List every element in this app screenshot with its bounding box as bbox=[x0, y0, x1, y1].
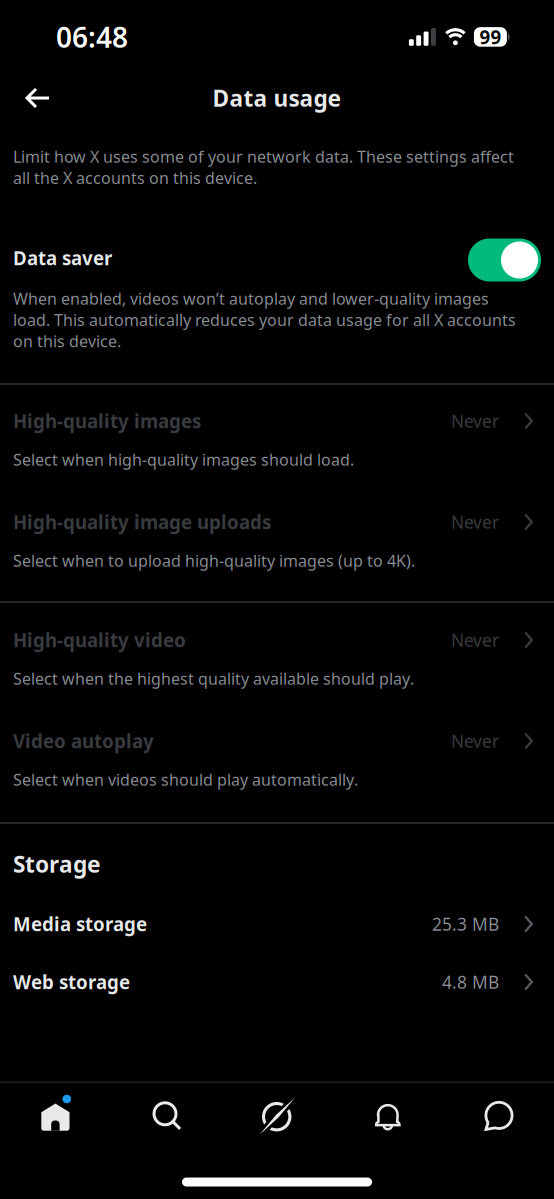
button[interactable]: Media storage bbox=[0, 902, 554, 946]
button[interactable]: Notifications bbox=[332, 1083, 443, 1151]
staticText: High-quality video bbox=[13, 628, 186, 652]
staticText: Never bbox=[451, 510, 499, 533]
button[interactable]: High-quality images bbox=[0, 399, 554, 443]
staticText: 99 bbox=[479, 24, 501, 49]
staticText: 25.3 MB bbox=[432, 912, 499, 935]
staticText: Media storage bbox=[13, 912, 147, 936]
staticText: Data usage bbox=[212, 83, 341, 113]
staticText: Never bbox=[451, 729, 499, 752]
button[interactable]: High-quality image uploads bbox=[0, 500, 554, 544]
staticText: 06:48 bbox=[56, 18, 128, 55]
staticText: Web storage bbox=[13, 970, 130, 994]
staticText: Video autoplay bbox=[13, 729, 154, 753]
button[interactable]: Messages bbox=[443, 1083, 554, 1151]
button[interactable]: Home bbox=[0, 1083, 111, 1151]
staticText: Never bbox=[451, 409, 499, 432]
button[interactable]: High-quality video bbox=[0, 618, 554, 662]
staticText: Select when videos should play automatic… bbox=[13, 769, 358, 790]
staticText: High-quality images bbox=[13, 409, 201, 433]
button[interactable]: Back bbox=[0, 76, 60, 120]
staticText: Select when high-quality images should l… bbox=[13, 449, 354, 470]
button[interactable]: Search bbox=[111, 1083, 222, 1151]
staticText: 4.8 MB bbox=[442, 970, 499, 993]
staticText: High-quality image uploads bbox=[13, 510, 271, 534]
staticText: Data saver bbox=[13, 246, 112, 270]
staticText: Never bbox=[451, 628, 499, 651]
button[interactable]: Grok bbox=[222, 1083, 332, 1151]
button[interactable]: Data saver bbox=[468, 236, 541, 279]
staticText: Limit how X uses some of your network da… bbox=[13, 146, 514, 188]
button[interactable]: Video autoplay bbox=[0, 719, 554, 763]
staticText: When enabled, videos won’t autoplay and … bbox=[13, 288, 516, 352]
staticText: Storage bbox=[13, 849, 101, 879]
button[interactable]: Web storage bbox=[0, 960, 554, 1004]
staticText: Select when to upload high-quality image… bbox=[13, 550, 415, 571]
staticText: Select when the highest quality availabl… bbox=[13, 668, 414, 689]
